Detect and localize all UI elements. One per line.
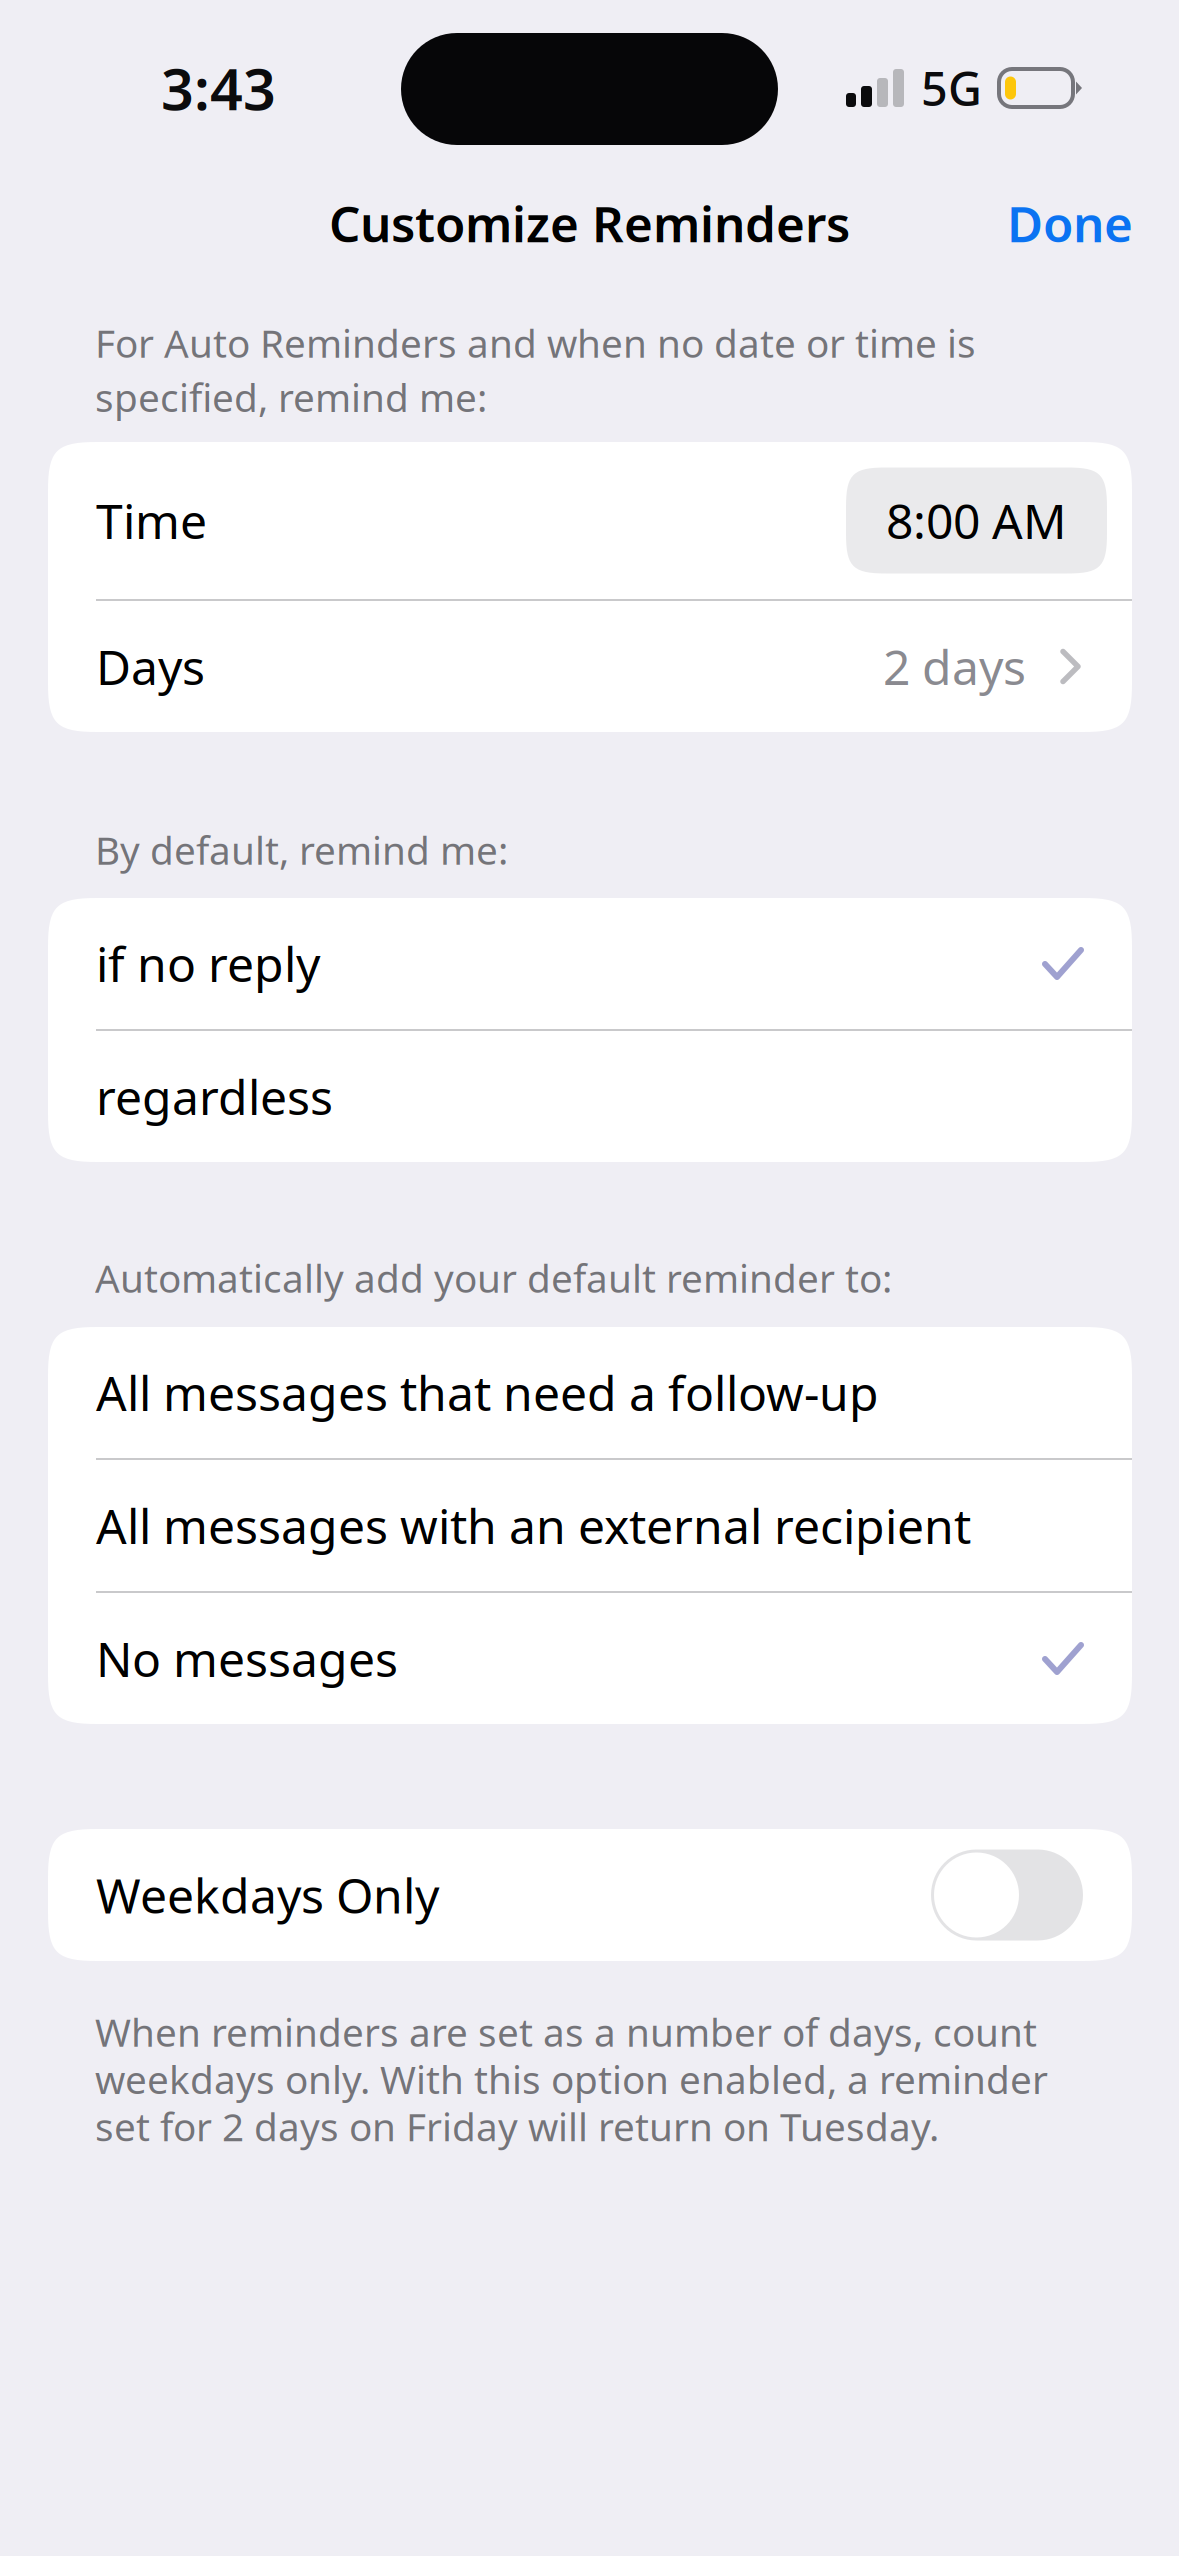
button[interactable]: Weekdays Only: [48, 1829, 1132, 1961]
staticText: All messages that need a follow-up: [96, 1361, 879, 1424]
button[interactable]: All messages that need a follow-up: [48, 1327, 1132, 1458]
staticText: Done: [1007, 190, 1133, 256]
button[interactable]: Days: [48, 601, 1132, 732]
button[interactable]: All messages with an external recipient: [48, 1460, 1132, 1591]
staticText: For Auto Reminders and when no date or t…: [95, 317, 976, 423]
staticText: Weekdays Only: [96, 1863, 439, 1927]
staticText: By default, remind me:: [95, 824, 508, 875]
staticText: Customize Reminders: [329, 190, 850, 256]
staticText: 2 days: [883, 635, 1026, 698]
staticText: All messages with an external recipient: [96, 1494, 971, 1557]
staticText: 5G: [921, 57, 982, 119]
button[interactable]: No messages: [48, 1593, 1132, 1724]
button[interactable]: if no reply: [48, 898, 1132, 1029]
button[interactable]: Done: [983, 160, 1157, 286]
staticText: if no reply: [96, 932, 320, 995]
staticText: When reminders are set as a number of da…: [95, 2006, 1048, 2152]
staticText: Time: [96, 489, 207, 552]
staticText: Days: [96, 635, 205, 698]
staticText: 8:00 AM: [886, 489, 1067, 552]
staticText: No messages: [96, 1627, 398, 1690]
staticText: 3:43: [161, 50, 276, 126]
button[interactable]: regardless: [48, 1031, 1132, 1162]
button[interactable]: Time: [48, 442, 1132, 599]
staticText: Automatically add your default reminder …: [95, 1252, 892, 1303]
staticText: regardless: [96, 1065, 333, 1128]
